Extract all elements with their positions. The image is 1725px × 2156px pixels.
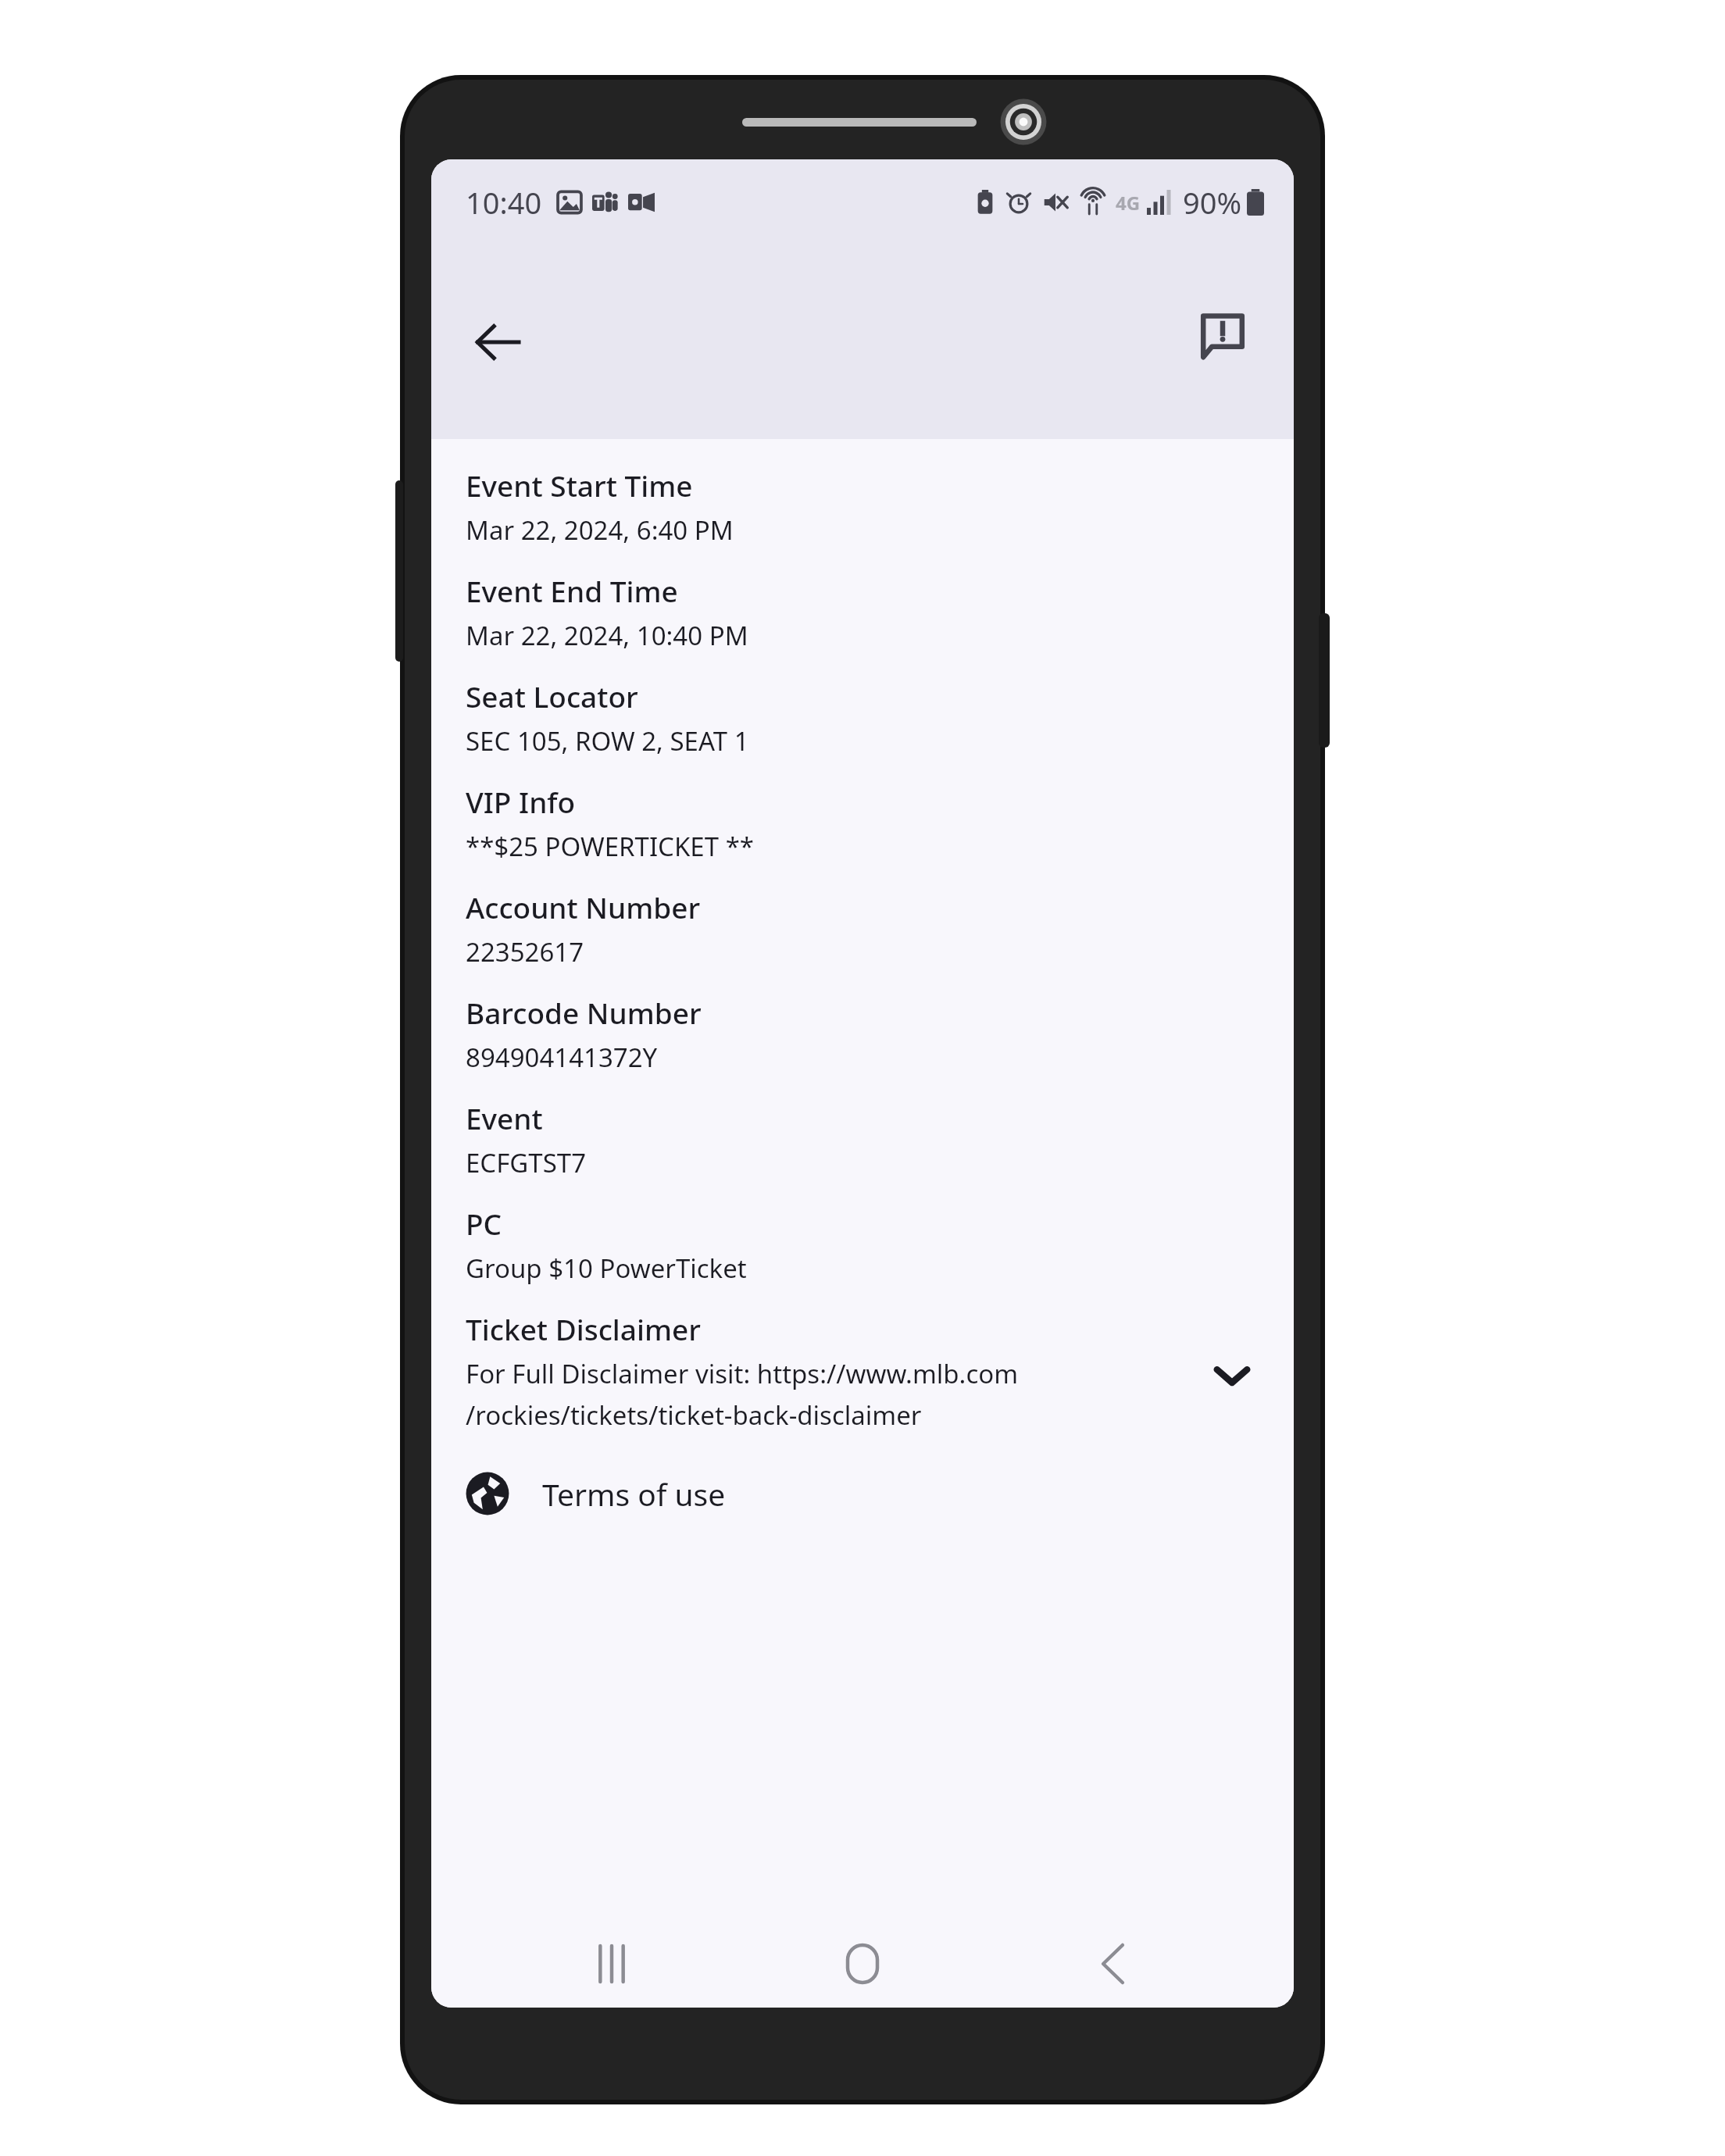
staticText: **$25 POWERTICKET ** bbox=[466, 829, 755, 864]
staticText: 10:40 bbox=[466, 182, 542, 223]
staticText: 894904141372Y bbox=[466, 1040, 658, 1075]
staticText: Barcode Number bbox=[466, 993, 702, 1032]
staticText: For Full Disclaimer visit: https://www.m… bbox=[466, 1356, 1019, 1391]
button[interactable]: Home bbox=[792, 1920, 933, 2008]
button[interactable]: Recent apps bbox=[541, 1920, 682, 2008]
button[interactable]: Seat Locator bbox=[431, 670, 1294, 776]
button[interactable]: PC bbox=[431, 1198, 1294, 1303]
staticText: /rockies/tickets/ticket-back-disclaimer bbox=[466, 1397, 922, 1433]
staticText: Seat Locator bbox=[466, 676, 638, 716]
button[interactable]: Event bbox=[431, 1092, 1294, 1198]
button[interactable]: Terms of use bbox=[431, 1464, 1294, 1526]
staticText: 4G bbox=[1116, 190, 1141, 216]
button[interactable]: Event End Time bbox=[431, 565, 1294, 670]
staticText: Group $10 PowerTicket bbox=[466, 1251, 747, 1286]
staticText: Mar 22, 2024, 10:40 PM bbox=[466, 618, 748, 653]
button[interactable]: Report a problem bbox=[1180, 293, 1266, 379]
staticText: Account Number bbox=[466, 887, 701, 926]
staticText: PC bbox=[466, 1204, 502, 1243]
staticText: Ticket Disclaimer bbox=[466, 1309, 701, 1348]
staticText: Terms of use bbox=[542, 1473, 726, 1515]
staticText: Mar 22, 2024, 6:40 PM bbox=[466, 512, 734, 548]
staticText: VIP Info bbox=[466, 782, 576, 821]
button[interactable]: Expand disclaimer bbox=[1205, 1348, 1259, 1403]
staticText: SEC 105, ROW 2, SEAT 1 bbox=[466, 723, 749, 759]
button[interactable]: Back bbox=[1043, 1920, 1184, 2008]
button[interactable]: Back bbox=[455, 299, 541, 385]
button[interactable]: Ticket Disclaimer bbox=[431, 1303, 1294, 1437]
staticText: Event End Time bbox=[466, 571, 678, 610]
button[interactable]: Barcode Number bbox=[431, 987, 1294, 1092]
staticText: 22352617 bbox=[466, 934, 584, 969]
staticText: Event bbox=[466, 1098, 543, 1137]
staticText: Event Start Time bbox=[466, 466, 693, 505]
button[interactable]: Account Number bbox=[431, 881, 1294, 987]
staticText: ECFGTST7 bbox=[466, 1145, 587, 1180]
staticText: 90% bbox=[1183, 182, 1242, 223]
button[interactable]: Event Start Time bbox=[431, 459, 1294, 565]
button[interactable]: VIP Info bbox=[431, 776, 1294, 881]
